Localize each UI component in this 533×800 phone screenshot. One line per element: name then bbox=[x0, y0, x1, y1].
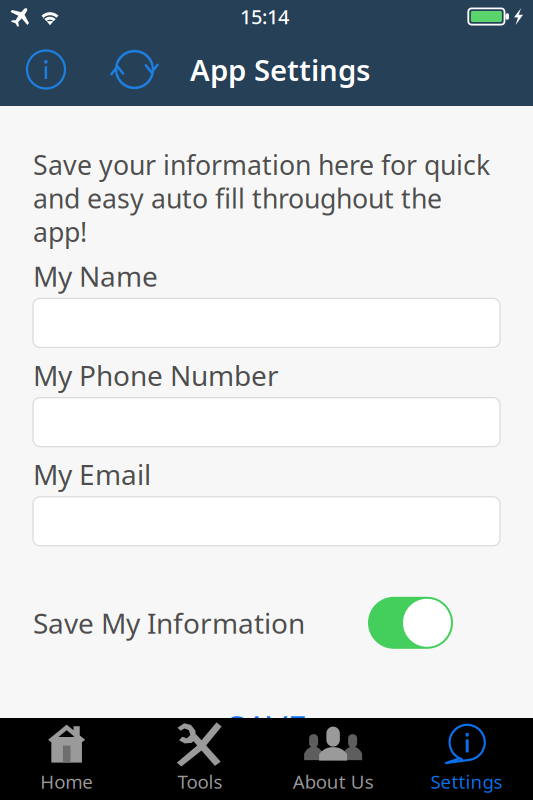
button[interactable]: Save My Information bbox=[368, 597, 453, 649]
staticText: My Email bbox=[33, 456, 151, 493]
staticText: Home bbox=[40, 769, 93, 794]
staticText: Tools bbox=[177, 769, 222, 794]
staticText: Save My Information bbox=[33, 604, 305, 641]
staticText: About Us bbox=[293, 769, 374, 794]
button[interactable]: Home bbox=[0, 718, 133, 800]
button[interactable]: Tools bbox=[133, 718, 266, 800]
staticText: SAVE bbox=[226, 705, 306, 751]
staticText: My Name bbox=[33, 257, 158, 294]
staticText: Settings bbox=[430, 769, 502, 794]
button[interactable]: Settings bbox=[400, 718, 533, 800]
button[interactable]: About Us bbox=[266, 718, 400, 800]
staticText: 15:14 bbox=[240, 3, 289, 30]
button[interactable]: SAVE bbox=[33, 705, 500, 751]
staticText: App Settings bbox=[190, 50, 370, 89]
staticText: My Phone Number bbox=[33, 356, 279, 394]
staticText: Save your information here for quick and… bbox=[33, 147, 490, 249]
button[interactable]: Info bbox=[24, 47, 68, 91]
button[interactable]: Refresh bbox=[111, 46, 159, 92]
